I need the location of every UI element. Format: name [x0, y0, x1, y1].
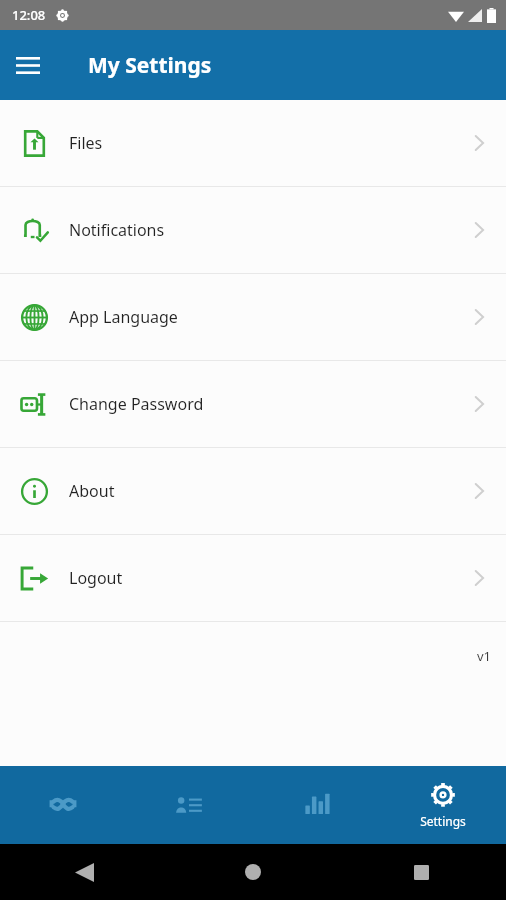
staticText: Files	[69, 132, 103, 154]
staticText: About	[69, 480, 115, 502]
button[interactable]: Files	[0, 100, 506, 186]
button[interactable]: Reports	[252, 766, 379, 844]
staticText: App Language	[69, 306, 178, 328]
staticText: 12:08	[12, 6, 46, 24]
staticText: Change Password	[69, 393, 204, 415]
button[interactable]: Contacts	[126, 766, 252, 844]
button[interactable]: Open navigation menu	[6, 43, 50, 87]
staticText: v1	[477, 647, 492, 665]
staticText: My Settings	[88, 51, 212, 80]
staticText: Settings	[420, 813, 466, 829]
staticText: Logout	[69, 567, 123, 589]
button[interactable]: Logout	[0, 535, 506, 621]
button[interactable]: Notifications	[0, 187, 506, 273]
button[interactable]: About	[0, 448, 506, 534]
staticText: Notifications	[69, 219, 165, 241]
button[interactable]: Settings	[379, 766, 506, 844]
button[interactable]: Change Password	[0, 361, 506, 447]
button[interactable]: Deals	[0, 766, 126, 844]
button[interactable]: App Language	[0, 274, 506, 360]
